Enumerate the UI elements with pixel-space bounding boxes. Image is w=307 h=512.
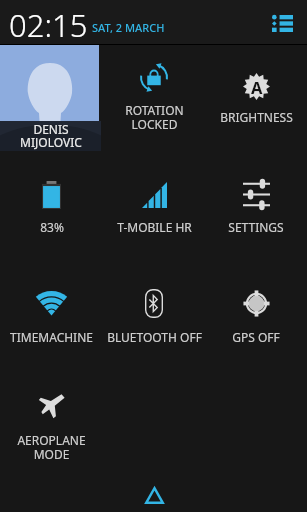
button[interactable]: BLUETOOTH OFF xyxy=(103,261,205,371)
button[interactable]: TIMEMACHINE xyxy=(0,261,103,371)
button[interactable]: GPS OFF xyxy=(205,261,307,371)
staticText: BLUETOOTH OFF xyxy=(107,329,202,345)
button[interactable]: AEROPLANE MODE xyxy=(0,371,103,481)
button[interactable]: A xyxy=(205,45,307,151)
button[interactable]: Collapse panel xyxy=(144,485,164,505)
button[interactable]: T-MOBILE HR xyxy=(103,151,205,261)
staticText: ROTATION LOCKED xyxy=(125,102,184,133)
staticText: T-MOBILE HR xyxy=(117,219,192,235)
button[interactable]: DENIS MIJOLOVIC xyxy=(0,45,103,151)
staticText: A xyxy=(251,76,263,98)
button[interactable]: Notifications xyxy=(265,6,299,40)
staticText: 02:15 xyxy=(9,4,88,46)
button[interactable]: 83% xyxy=(0,151,103,261)
staticText: SAT, 2 MARCH xyxy=(92,20,165,35)
staticText: TIMEMACHINE xyxy=(10,329,93,345)
staticText: BRIGHTNESS xyxy=(220,109,293,125)
staticText: 83% xyxy=(40,219,64,235)
staticText: AEROPLANE MODE xyxy=(17,432,86,463)
button[interactable]: SETTINGS xyxy=(205,151,307,261)
staticText: SETTINGS xyxy=(228,219,284,235)
button[interactable]: ROTATION LOCKED xyxy=(103,45,205,151)
staticText: GPS OFF xyxy=(232,329,280,345)
staticText: DENIS MIJOLOVIC xyxy=(20,121,82,151)
